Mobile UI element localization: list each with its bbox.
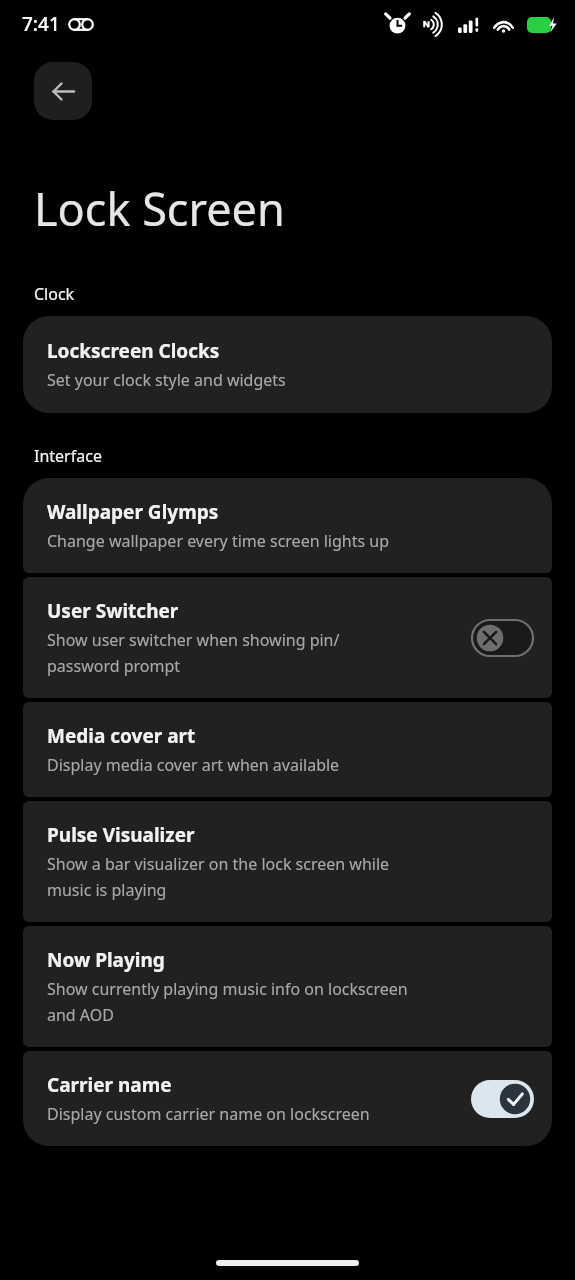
staticText: Show currently playing music info on loc…: [47, 978, 408, 1026]
button[interactable]: Wallpaper Glymps: [23, 478, 552, 573]
staticText: Interface: [34, 445, 102, 467]
button[interactable]: Toggle on: [471, 1080, 534, 1118]
staticText: Pulse Visualizer: [47, 822, 195, 848]
button[interactable]: User Switcher: [23, 577, 552, 698]
button[interactable]: Lockscreen Clocks: [23, 316, 552, 413]
button[interactable]: Pulse Visualizer: [23, 801, 552, 922]
staticText: Show user switcher when showing pin/ pas…: [47, 629, 340, 677]
staticText: Lock Screen: [34, 178, 285, 239]
button[interactable]: Toggle off: [471, 619, 534, 657]
staticText: Carrier name: [47, 1072, 172, 1098]
button[interactable]: Media cover art: [23, 702, 552, 797]
staticText: Set your clock style and widgets: [47, 369, 286, 391]
button[interactable]: Now Playing: [23, 926, 552, 1047]
button[interactable]: Carrier name: [23, 1051, 552, 1146]
staticText: User Switcher: [47, 598, 179, 624]
staticText: Show a bar visualizer on the lock screen…: [47, 853, 390, 901]
button[interactable]: Back: [34, 62, 92, 120]
staticText: 7:41: [22, 11, 60, 37]
staticText: Wallpaper Glymps: [47, 499, 219, 525]
staticText: Display media cover art when available: [47, 754, 340, 776]
staticText: Clock: [34, 283, 75, 305]
staticText: Display custom carrier name on lockscree…: [47, 1103, 370, 1125]
staticText: Media cover art: [47, 723, 196, 749]
staticText: Lockscreen Clocks: [47, 338, 220, 364]
staticText: Change wallpaper every time screen light…: [47, 530, 390, 552]
staticText: Now Playing: [47, 947, 165, 973]
